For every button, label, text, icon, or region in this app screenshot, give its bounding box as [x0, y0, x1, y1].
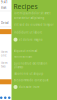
staticText: lorem ipsum dolor sit amet [13, 11, 50, 15]
staticText: aliqua ut enim ad [13, 49, 37, 53]
staticText: ex ea commodo consequat [13, 78, 48, 82]
staticText: minim veniam [13, 55, 31, 58]
staticText: quis nostrud exercitation ullamco [13, 62, 47, 69]
staticText: laboris nisi ut aliquip [13, 72, 43, 75]
staticText: consectetur adipiscing [13, 16, 44, 20]
staticText: Recipes [13, 2, 37, 11]
staticText: et dolore magna [19, 38, 42, 41]
staticText: elit sed do eiusmod tempor [13, 23, 53, 26]
staticText: Detail [1, 21, 9, 25]
staticText: Back [1, 6, 6, 9]
staticText: incididunt ut labore [13, 31, 42, 34]
staticText: 9:41 [1, 0, 8, 4]
staticText: item one [1, 50, 7, 57]
staticText: duis aute irure [19, 85, 40, 89]
staticText: item two [1, 61, 7, 68]
